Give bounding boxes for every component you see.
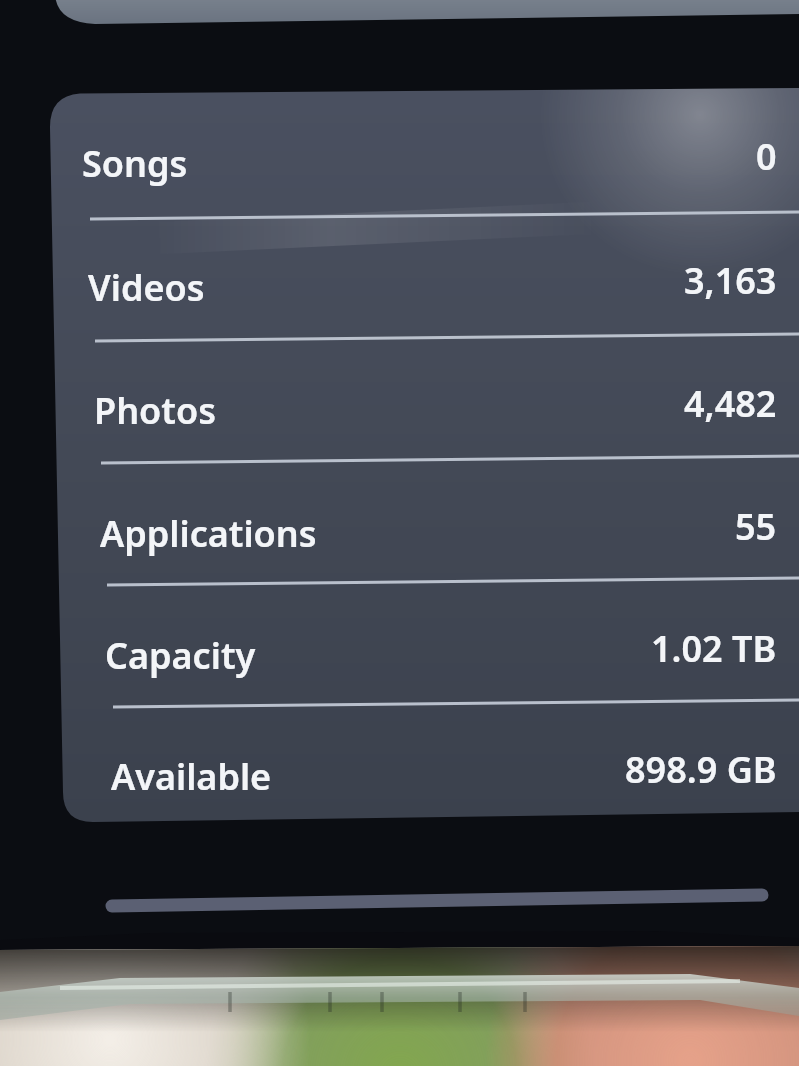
button[interactable]: Device storage details [0,0,799,1066]
